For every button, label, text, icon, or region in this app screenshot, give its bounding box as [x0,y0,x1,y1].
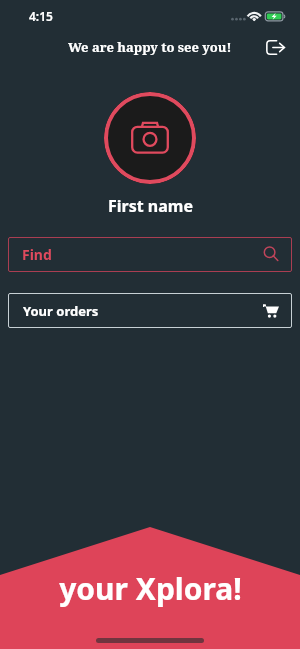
button[interactable]: Find [8,237,292,272]
other: Search [264,246,281,263]
staticText: We are happy to see you! [68,38,232,56]
button[interactable]: Log out [260,32,290,62]
staticText: First name [108,195,193,217]
staticText: your Xplora! [59,568,242,609]
other: Your orders [263,304,279,318]
button[interactable]: Your orders [8,293,292,328]
button[interactable]: Add photo [104,92,196,184]
staticText: Your orders [23,302,99,320]
staticText: 4:15 [29,8,53,24]
staticText: Find [22,245,52,264]
